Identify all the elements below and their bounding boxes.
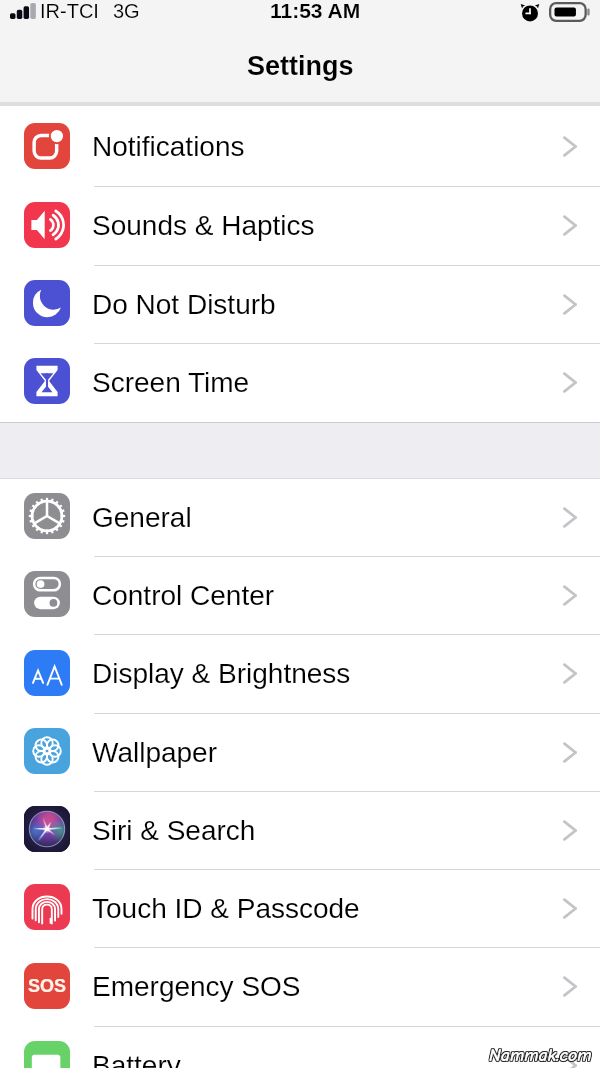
staticText: Sounds & Haptics: [92, 210, 315, 241]
staticText: Nammak.com: [488, 1044, 591, 1065]
staticText: Nammak.com: [489, 1045, 592, 1066]
other: Alarm: [520, 2, 540, 22]
staticText: Emergency SOS: [92, 971, 301, 1002]
staticText: 3G: [113, 0, 140, 22]
button[interactable]: Screen Time: [0, 344, 600, 422]
staticText: Nammak.com: [488, 1046, 591, 1067]
button[interactable]: Display & Brightness: [0, 635, 600, 714]
button[interactable]: Do Not Disturb: [0, 266, 600, 344]
button[interactable]: Siri & Search: [0, 792, 600, 870]
button[interactable]: Sounds & Haptics: [0, 187, 600, 266]
button[interactable]: Wallpaper: [0, 714, 600, 792]
staticText: Nammak.com: [490, 1045, 593, 1066]
staticText: Nammak.com: [490, 1044, 593, 1065]
other: Battery: [549, 2, 591, 22]
button[interactable]: Battery: [0, 1027, 600, 1068]
staticText: Settings: [247, 51, 354, 81]
staticText: Control Center: [92, 580, 275, 611]
button[interactable]: Touch ID & Passcode: [0, 870, 600, 948]
button[interactable]: Control Center: [0, 557, 600, 635]
staticText: IR-TCI: [40, 0, 99, 22]
staticText: Siri & Search: [92, 815, 256, 846]
staticText: Nammak.com: [489, 1046, 592, 1067]
button[interactable]: General: [0, 479, 600, 557]
staticText: Wallpaper: [92, 737, 218, 768]
staticText: Notifications: [92, 131, 245, 162]
staticText: 11:53 AM: [270, 0, 361, 22]
staticText: Display & Brightness: [92, 658, 351, 689]
button[interactable]: Notifications: [0, 108, 600, 187]
staticText: Do Not Disturb: [92, 289, 276, 320]
staticText: SOS: [28, 976, 67, 996]
staticText: Touch ID & Passcode: [92, 893, 360, 924]
staticText: Screen Time: [92, 367, 250, 398]
button[interactable]: SOS: [0, 948, 600, 1027]
staticText: Nammak.com: [489, 1044, 592, 1065]
staticText: Nammak.com: [490, 1046, 593, 1067]
staticText: Battery: [92, 1050, 181, 1068]
staticText: General: [92, 502, 192, 533]
staticText: Nammak.com: [488, 1045, 591, 1066]
